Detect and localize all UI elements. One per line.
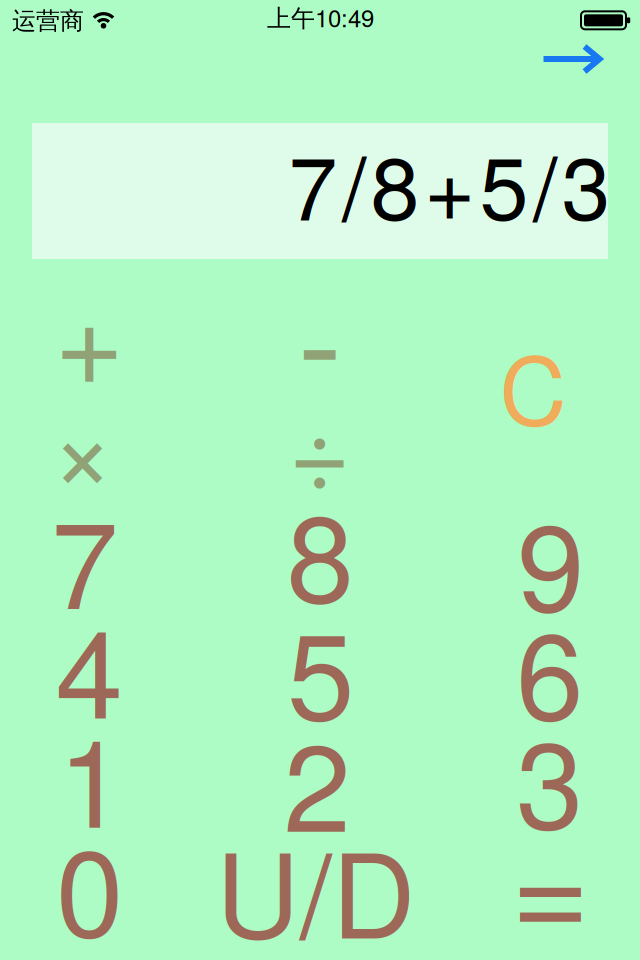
staticText: 9 (517, 472, 584, 646)
button[interactable]: U/D (216, 805, 416, 960)
button[interactable]: = (511, 783, 590, 960)
staticText: ÷ (288, 368, 350, 521)
staticText: C (499, 318, 566, 452)
staticText: 上午10:49 (267, 0, 374, 34)
button[interactable]: 0 (56, 798, 123, 960)
button[interactable]: 2 (283, 692, 350, 866)
button[interactable]: 3 (516, 690, 583, 864)
staticText: 6 (516, 581, 583, 755)
staticText: 7 (51, 470, 118, 643)
button[interactable]: 4 (55, 579, 122, 753)
staticText: 运营商 (12, 6, 84, 36)
staticText: 1 (58, 688, 125, 862)
staticText: U/D (216, 805, 416, 960)
button[interactable]: + (54, 247, 124, 419)
staticText: 7/8+5/3 (288, 119, 610, 245)
staticText: × (51, 366, 114, 521)
staticText: = (511, 783, 590, 960)
staticText: 2 (283, 692, 350, 866)
button[interactable]: 6 (516, 581, 583, 755)
staticText: 0 (56, 798, 123, 960)
button[interactable]: 1 (58, 688, 125, 862)
button[interactable]: 8 (286, 463, 353, 637)
button[interactable]: Calculate (540, 42, 602, 76)
button[interactable]: 5 (287, 581, 354, 755)
button[interactable]: × (51, 366, 114, 521)
staticText: + (54, 247, 124, 419)
button[interactable]: C (499, 318, 566, 452)
staticText: 8 (286, 463, 353, 637)
button[interactable]: 9 (517, 472, 584, 646)
button[interactable]: ÷ (288, 368, 350, 521)
staticText: 3 (516, 690, 583, 864)
button[interactable]: 7 (51, 470, 118, 643)
staticText: 5 (287, 581, 354, 755)
staticText: 4 (55, 579, 122, 753)
button[interactable]: - (298, 239, 342, 429)
staticText: - (298, 239, 342, 429)
